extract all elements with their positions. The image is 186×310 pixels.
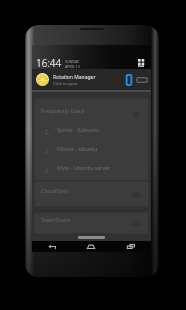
button[interactable]: Home	[71, 241, 111, 252]
button[interactable]: Mitsos - Ubuntu	[34, 141, 149, 160]
staticText: APRIL 13	[65, 64, 80, 69]
button[interactable]: Spiros - Kubuntu	[34, 122, 149, 141]
button[interactable]: Rotation Manager	[32, 69, 151, 90]
button[interactable]: Quick settings	[138, 59, 146, 67]
button[interactable]: TeamShare	[34, 212, 149, 234]
button[interactable]: Frequently Used	[34, 98, 149, 122]
staticText: TeamShare	[41, 216, 71, 224]
staticText: Mitsos - Ubuntu	[57, 145, 98, 152]
staticText: Frequently Used	[41, 107, 84, 115]
button[interactable]: CloudSync	[34, 181, 149, 207]
button[interactable]: Back	[32, 241, 71, 252]
staticText: CloudSync	[41, 187, 69, 195]
button[interactable]: Mylo - Ubuntu server	[34, 160, 149, 179]
staticText: SUNDAY	[65, 59, 79, 64]
button[interactable]: Recent apps	[111, 241, 151, 252]
staticText: 16:44	[36, 56, 62, 69]
staticText: Spiros - Kubuntu	[57, 126, 100, 133]
staticText: Click to open	[53, 81, 78, 86]
staticText: Mylo - Ubuntu server	[57, 164, 111, 171]
staticText: Rotation Manager	[53, 74, 96, 81]
